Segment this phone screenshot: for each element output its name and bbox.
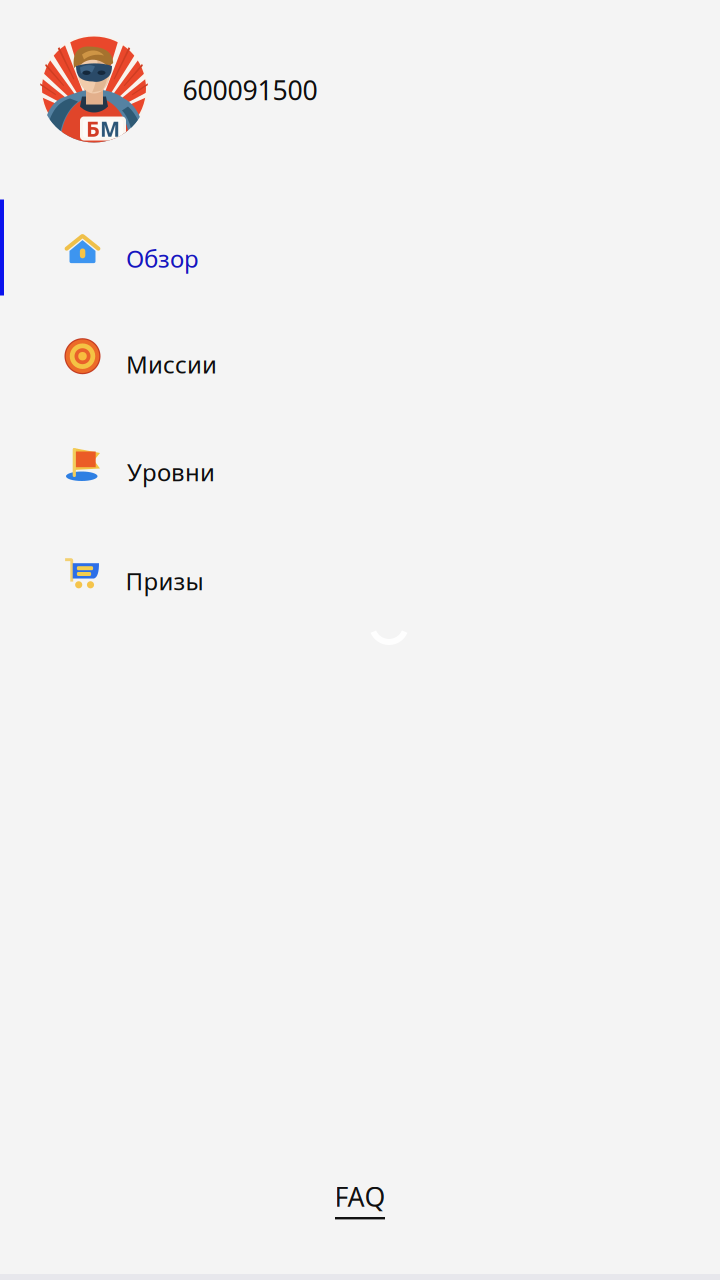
staticText: Миссии <box>126 348 217 380</box>
staticText: Призы <box>125 565 203 597</box>
staticText: М <box>100 114 120 143</box>
staticText: FAQ <box>334 1179 385 1214</box>
staticText: 600091500 <box>182 72 317 108</box>
button[interactable]: FAQ <box>324 1179 396 1219</box>
button[interactable]: Б <box>40 34 380 142</box>
staticText: Б <box>86 114 100 143</box>
button[interactable]: Обзор <box>0 195 720 303</box>
staticText: Уровни <box>127 456 215 488</box>
button[interactable]: Призы <box>0 517 720 625</box>
button[interactable]: Миссии <box>0 301 720 409</box>
staticText: Обзор <box>126 242 199 274</box>
button[interactable]: Уровни <box>0 408 720 516</box>
